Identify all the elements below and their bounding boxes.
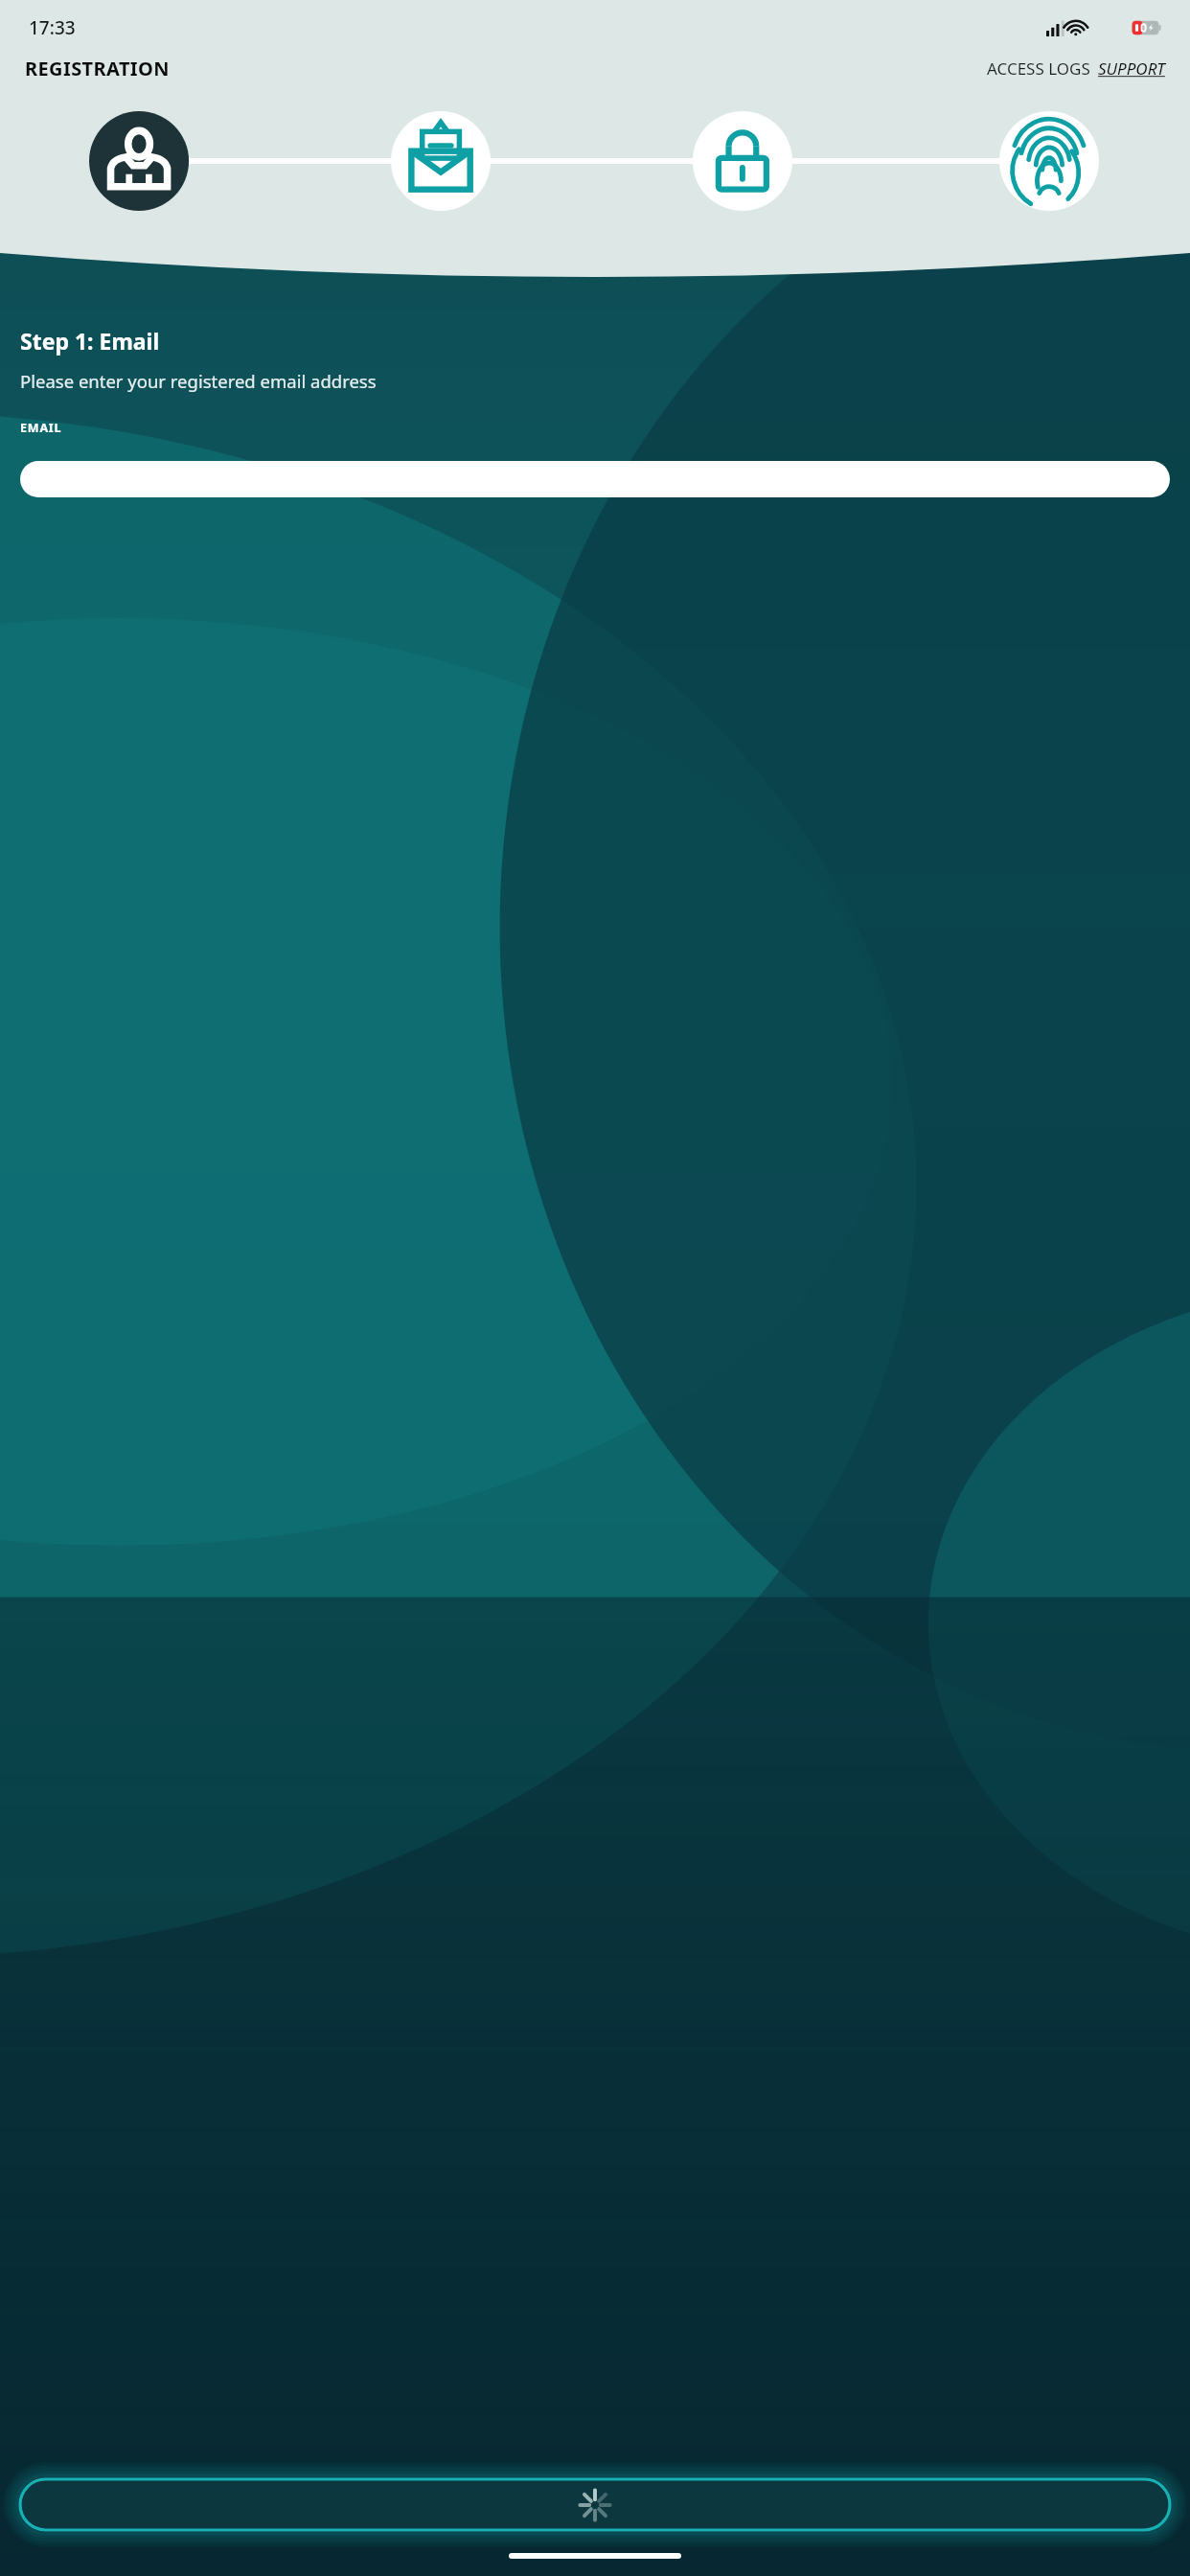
staticText: Please enter your registered email addre… xyxy=(20,369,377,393)
staticText: ACCESS LOGS xyxy=(987,57,1090,80)
button[interactable]: SUPPORT xyxy=(1098,57,1165,80)
button[interactable] xyxy=(20,461,1170,497)
button[interactable]: Continue, loading xyxy=(20,2479,1170,2530)
button[interactable]: ACCESS LOGS xyxy=(987,57,1090,80)
staticText: REGISTRATION xyxy=(25,56,170,81)
staticText: Step 1: Email xyxy=(20,326,160,356)
staticText: SUPPORT xyxy=(1098,57,1165,80)
staticText: 17:33 xyxy=(29,15,76,40)
staticText: EMAIL xyxy=(20,420,62,436)
